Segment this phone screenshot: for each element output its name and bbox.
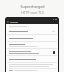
button[interactable]: Back bbox=[7, 21, 9, 23]
button[interactable] bbox=[7, 35, 57, 41]
button[interactable] bbox=[7, 63, 57, 68]
button[interactable]: Tag bbox=[9, 70, 13, 71]
button[interactable] bbox=[7, 56, 57, 62]
button[interactable]: Preview bbox=[53, 51, 55, 54]
staticText: HTTP over TLS bbox=[21, 10, 44, 15]
button[interactable] bbox=[7, 42, 57, 48]
button[interactable]: Preview bbox=[7, 49, 57, 55]
staticText: Supercharged bbox=[20, 4, 45, 9]
button[interactable]: Toggle bbox=[7, 28, 57, 34]
